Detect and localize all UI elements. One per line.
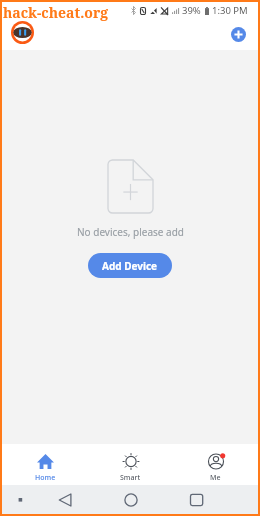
button[interactable]: Add device <box>231 27 246 42</box>
button[interactable]: Me <box>173 444 258 485</box>
staticText: 39% <box>182 4 201 17</box>
staticText: No devices, please add <box>77 225 184 239</box>
button[interactable]: Home <box>2 444 88 485</box>
staticText: Me <box>210 473 221 483</box>
staticText: hack-cheat.org <box>3 3 109 22</box>
button[interactable]: Add Device <box>88 253 172 278</box>
staticText: Home <box>35 473 56 483</box>
staticText: 1:30 PM <box>212 4 248 17</box>
staticText: Smart <box>120 473 141 483</box>
button[interactable]: Smart <box>88 444 173 485</box>
staticText: Add Device <box>102 259 158 273</box>
